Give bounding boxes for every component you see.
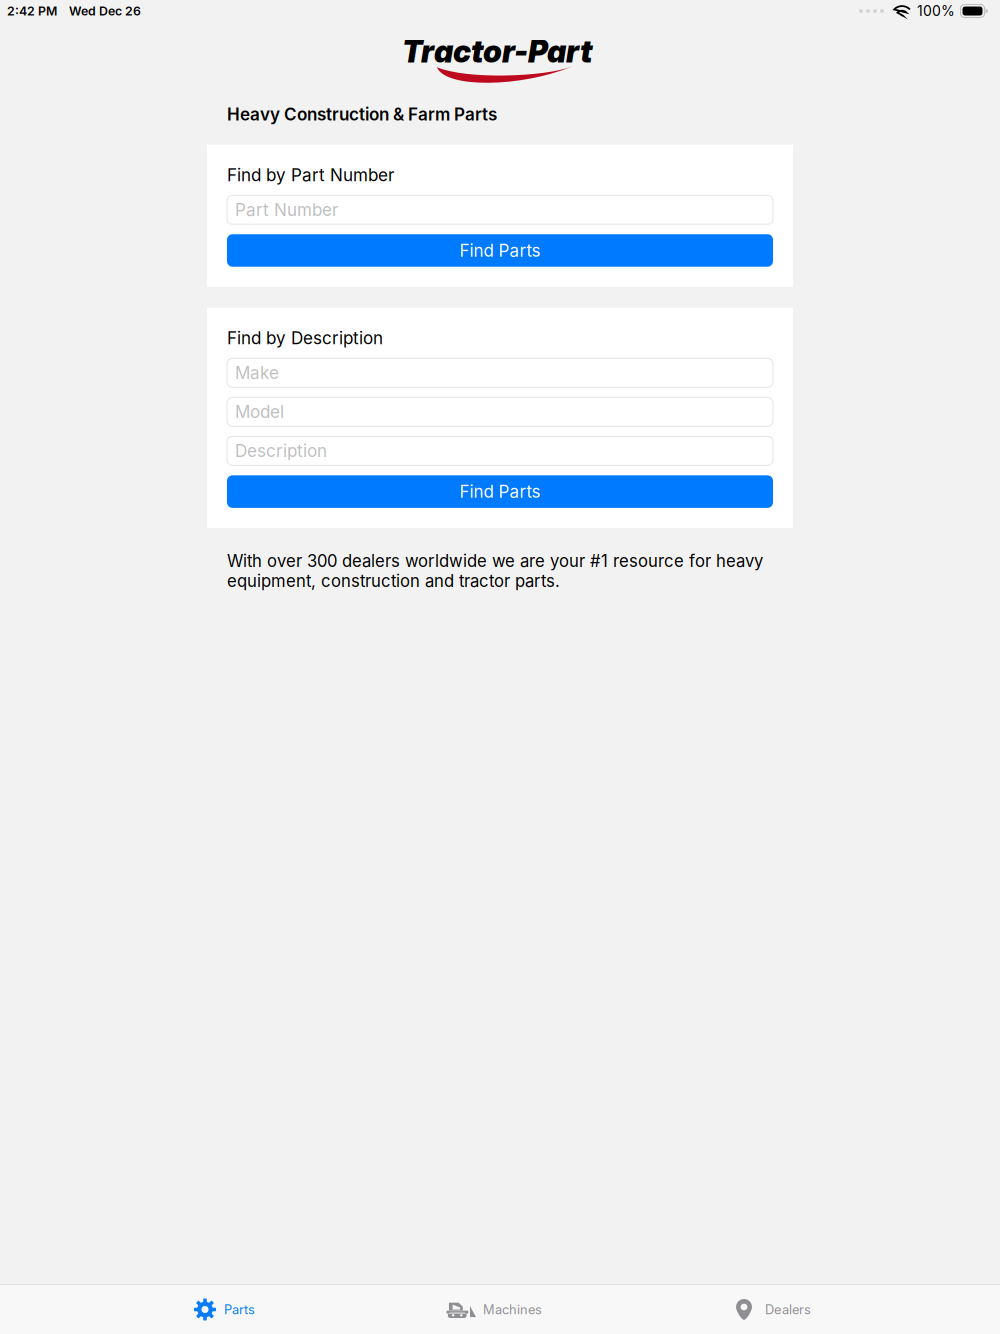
staticText: Model (235, 401, 284, 422)
staticText: Tractor-Part (402, 33, 592, 70)
staticText: 100% (917, 2, 955, 19)
staticText: Find by Description (227, 328, 383, 348)
button[interactable]: Parts (194, 1285, 255, 1334)
staticText: Part Number (235, 199, 338, 220)
staticText: Dealers (765, 1302, 811, 1317)
staticText: Find Parts (459, 240, 540, 261)
staticText: Make (235, 362, 279, 383)
button[interactable]: Machines (446, 1285, 542, 1334)
staticText: 2:42 PM (7, 3, 57, 18)
staticText: Find by Part Number (227, 165, 394, 185)
staticText: Wed Dec 26 (69, 3, 141, 18)
staticText: Description (235, 440, 327, 461)
staticText: Find Parts (459, 481, 540, 502)
staticText: Heavy Construction & Farm Parts (227, 104, 497, 125)
button[interactable]: Dealers (736, 1285, 811, 1334)
button[interactable]: Find Parts (227, 234, 773, 267)
staticText: With over 300 dealers worldwide we are y… (227, 551, 763, 591)
staticText: Parts (224, 1302, 255, 1317)
staticText: Machines (483, 1302, 542, 1317)
button[interactable]: Find Parts (227, 475, 773, 508)
